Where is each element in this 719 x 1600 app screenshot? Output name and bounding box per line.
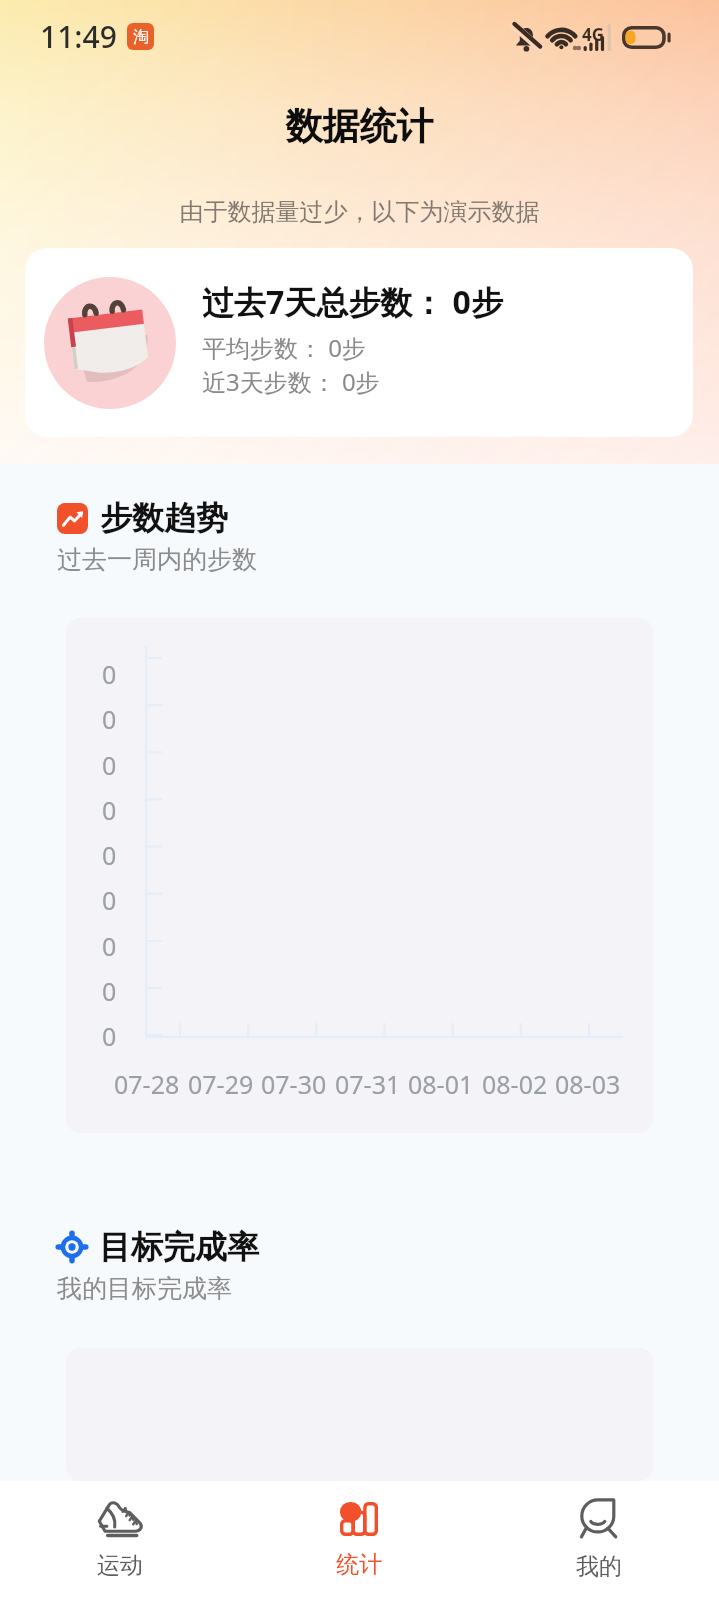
staticText: 0 [102, 748, 117, 782]
staticText: 08-03 [555, 1067, 621, 1101]
button[interactable]: 0 [66, 618, 653, 1133]
staticText: 近3天步数： 0步 [202, 365, 380, 398]
button[interactable]: 过去7天总步数： 0步 [25, 248, 693, 437]
staticText: 0 [102, 657, 117, 691]
staticText: 我的目标完成率 [57, 1273, 232, 1304]
staticText: 08-02 [482, 1067, 548, 1101]
staticText: 步数趋势 [100, 498, 228, 538]
staticText: 07-31 [335, 1067, 401, 1101]
staticText: 4G [582, 23, 605, 46]
staticText: 过去7天总步数： 0步 [202, 280, 503, 324]
button[interactable]: 统计 [239, 1481, 479, 1600]
staticText: 运动 [97, 1551, 143, 1580]
staticText: 11:49 [40, 16, 117, 57]
staticText: 08-01 [408, 1067, 474, 1101]
staticText: 我的 [576, 1552, 622, 1581]
staticText: 0 [102, 974, 117, 1008]
staticText: 数据统计 [0, 103, 719, 150]
staticText: 淘 [133, 27, 149, 47]
staticText: 0 [102, 1019, 117, 1053]
staticText: 0 [102, 883, 117, 917]
staticText: 07-28 [114, 1067, 180, 1101]
staticText: 过去一周内的步数 [57, 544, 257, 575]
staticText: 平均步数： 0步 [202, 331, 366, 364]
staticText: 0 [102, 929, 117, 963]
staticText: 统计 [336, 1550, 382, 1579]
staticText: 07-30 [261, 1067, 327, 1101]
staticText: 0 [102, 793, 117, 827]
button[interactable]: 我的 [479, 1481, 719, 1600]
staticText: 07-29 [188, 1067, 254, 1101]
staticText: 0 [102, 838, 117, 872]
staticText: 0 [102, 702, 117, 736]
button[interactable]: 运动 [0, 1481, 239, 1600]
staticText: 目标完成率 [99, 1227, 259, 1267]
staticText: 由于数据量过少，以下为演示数据 [0, 197, 719, 227]
